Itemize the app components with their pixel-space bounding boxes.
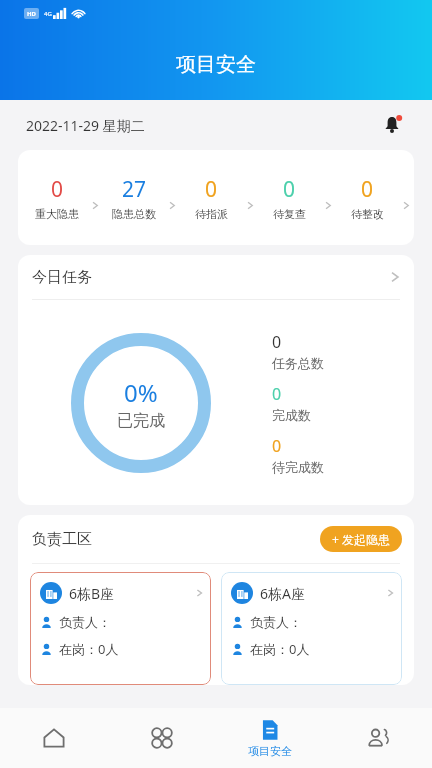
staticText: 6栋B座 <box>69 584 115 603</box>
staticText: 在岗：0人 <box>250 640 310 658</box>
staticText: 项目安全 <box>176 52 256 77</box>
button[interactable]: 0 <box>332 175 410 221</box>
staticText: 待完成数 <box>272 459 324 475</box>
staticText: 0 <box>361 175 374 204</box>
button[interactable]: 项目安全 <box>216 708 324 768</box>
staticText: 在岗：0人 <box>59 640 119 658</box>
button[interactable]: 6栋A座 <box>221 572 402 685</box>
button[interactable]: 0 <box>254 175 332 221</box>
button[interactable]: Home <box>0 708 108 768</box>
button[interactable]: 27 <box>99 175 176 221</box>
staticText: 0 <box>51 175 64 204</box>
staticText: 负责工区 <box>32 530 92 549</box>
staticText: 隐患总数 <box>112 207 156 221</box>
button[interactable]: Apps <box>108 708 216 768</box>
staticText: 待整改 <box>351 207 384 221</box>
staticText: 6栋A座 <box>260 584 305 603</box>
staticText: 0 <box>272 435 282 457</box>
staticText: 27 <box>122 175 147 204</box>
button[interactable]: 6栋B座 <box>30 572 211 685</box>
button[interactable]: 0 <box>176 175 254 221</box>
button[interactable]: 0 <box>22 175 99 221</box>
staticText: 0 <box>272 383 282 405</box>
button[interactable]: + 发起隐患 <box>320 526 402 552</box>
button[interactable]: 今日任务 <box>18 255 414 299</box>
staticText: 待指派 <box>195 207 228 221</box>
staticText: 2022-11-29 星期二 <box>26 116 145 135</box>
staticText: 项目安全 <box>248 744 292 758</box>
button[interactable]: Notifications <box>378 111 406 139</box>
staticText: 0 <box>283 175 296 204</box>
staticText: 负责人： <box>250 614 302 630</box>
staticText: 重大隐患 <box>35 207 79 221</box>
staticText: + 发起隐患 <box>332 531 390 547</box>
staticText: HD <box>27 10 36 18</box>
staticText: 4G <box>44 10 52 18</box>
staticText: 完成数 <box>272 407 311 423</box>
staticText: 0% <box>124 376 158 409</box>
staticText: 今日任务 <box>32 268 92 287</box>
button[interactable]: Contacts <box>324 708 432 768</box>
staticText: 0 <box>205 175 218 204</box>
staticText: 已完成 <box>117 411 165 431</box>
staticText: 待复查 <box>273 207 306 221</box>
staticText: 任务总数 <box>272 355 324 371</box>
staticText: 0 <box>272 331 282 353</box>
staticText: 负责人： <box>59 614 111 630</box>
